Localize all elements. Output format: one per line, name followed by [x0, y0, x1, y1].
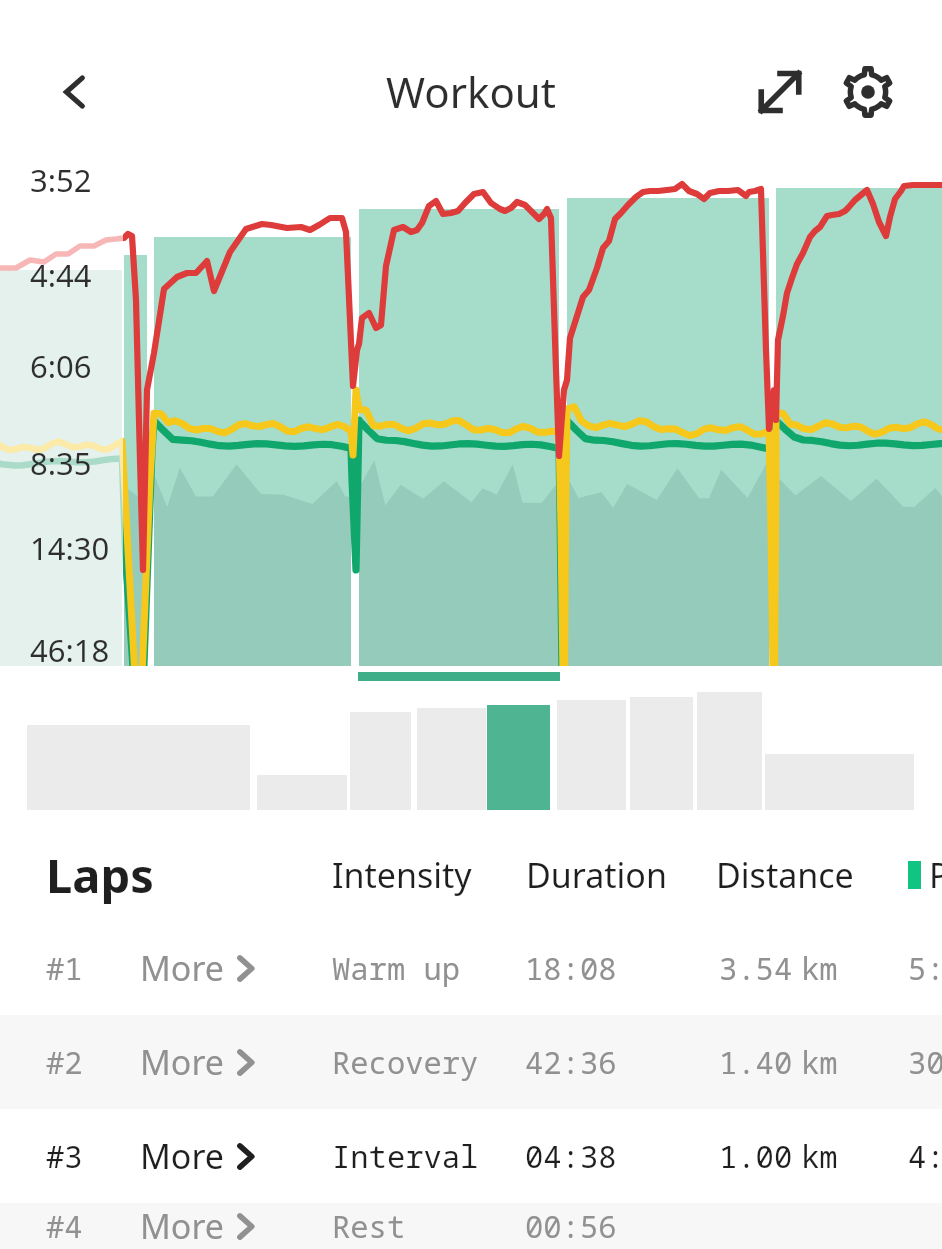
staticText: Intensity	[332, 852, 472, 898]
staticText: More	[140, 1133, 224, 1179]
staticText: Recovery	[332, 1041, 479, 1083]
staticText: 5:	[908, 947, 942, 989]
button[interactable]: Fullscreen	[744, 56, 816, 128]
staticText: Workout	[386, 63, 556, 120]
staticText: km	[801, 1135, 838, 1177]
staticText: 18:08	[525, 947, 617, 989]
staticText: Rest	[332, 1205, 406, 1247]
staticText: Distance	[716, 852, 854, 898]
staticText: 00:56	[525, 1205, 617, 1247]
staticText: 30	[908, 1041, 942, 1083]
staticText: 3:52	[30, 159, 92, 201]
staticText: #3	[46, 1135, 83, 1177]
staticText: 46:18	[30, 629, 110, 671]
staticText: Interval	[332, 1135, 479, 1177]
staticText: More	[140, 945, 224, 991]
staticText: 1.40	[719, 1041, 793, 1083]
staticText: Warm up	[332, 947, 461, 989]
staticText: Duration	[526, 852, 667, 898]
staticText: 14:30	[30, 527, 110, 569]
staticText: P	[929, 852, 942, 898]
button[interactable]: #2	[0, 1015, 942, 1109]
button[interactable]: Settings	[832, 56, 904, 128]
staticText: #2	[46, 1041, 83, 1083]
button[interactable]: Back	[38, 56, 110, 128]
staticText: 42:36	[525, 1041, 617, 1083]
staticText: 1.00	[719, 1135, 793, 1177]
button[interactable]: #4	[0, 1203, 942, 1249]
staticText: km	[801, 1041, 838, 1083]
staticText: #1	[46, 947, 83, 989]
staticText: 4:44	[30, 254, 92, 296]
staticText: 3.54	[719, 947, 793, 989]
button[interactable]: #3	[0, 1109, 942, 1203]
staticText: 4:	[908, 1135, 942, 1177]
staticText: #4	[46, 1205, 83, 1247]
staticText: km	[801, 947, 838, 989]
staticText: Laps	[46, 843, 154, 907]
staticText: More	[140, 1203, 224, 1249]
staticText: More	[140, 1039, 224, 1085]
staticText: 04:38	[525, 1135, 617, 1177]
staticText: 6:06	[30, 345, 92, 387]
button[interactable]: #1	[0, 921, 942, 1015]
staticText: 8:35	[30, 442, 92, 484]
